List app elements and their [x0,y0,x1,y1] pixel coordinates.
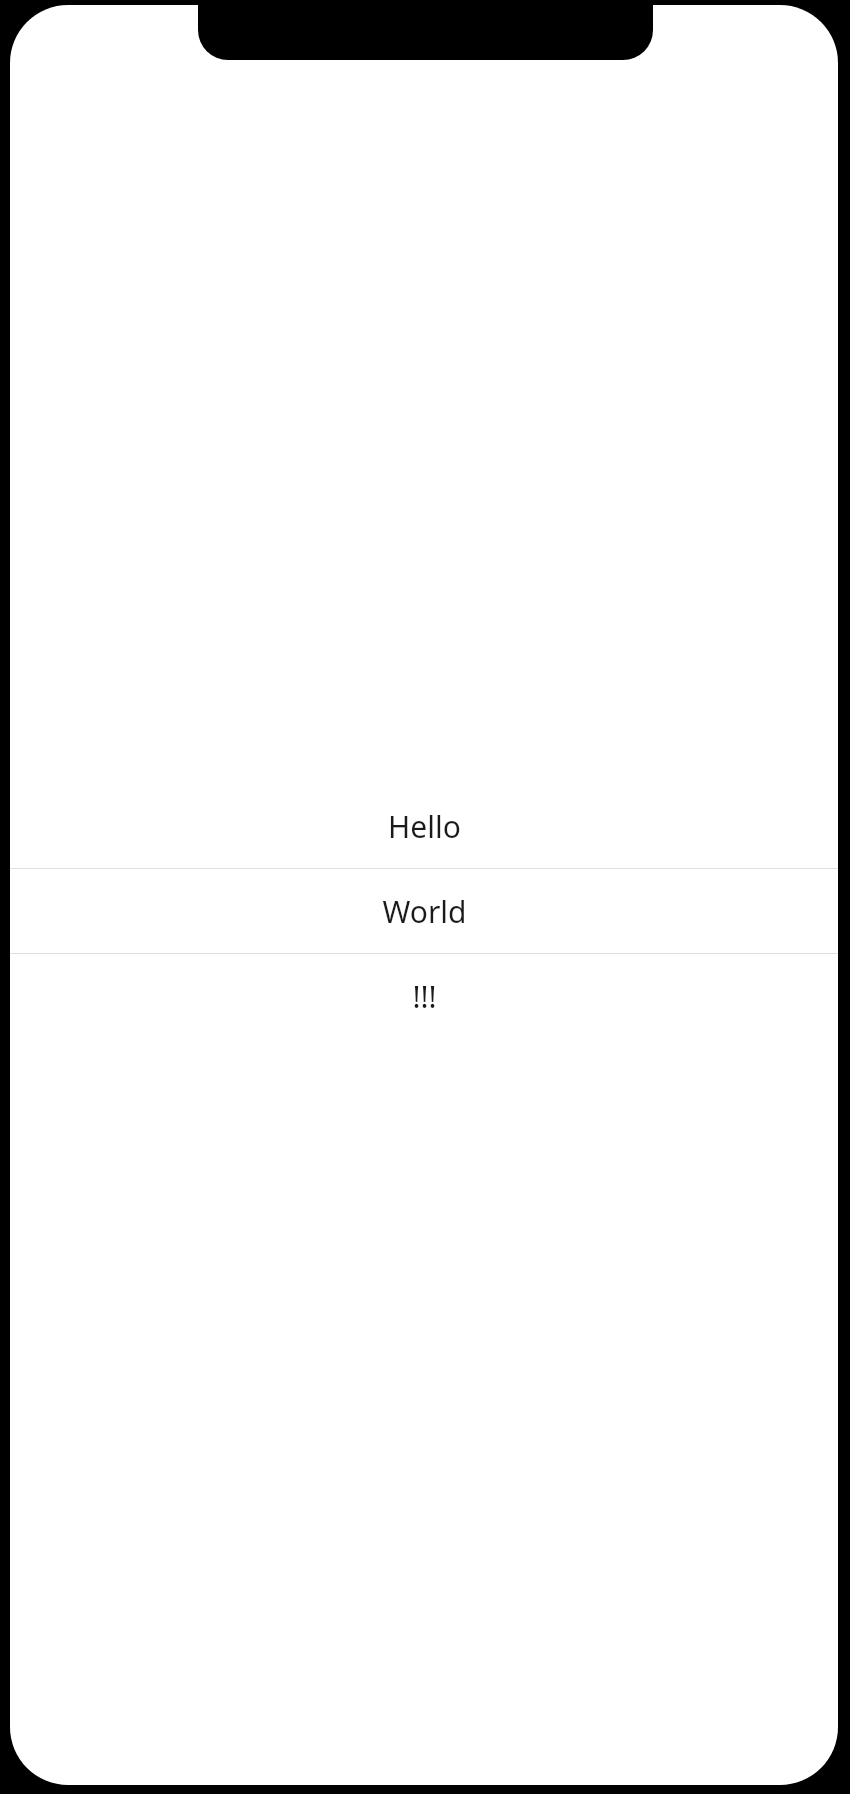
staticText: Hello [388,806,461,847]
staticText: !!! [412,976,437,1017]
button[interactable]: Hello [10,784,838,868]
button[interactable]: !!! [10,954,838,1038]
button[interactable]: World [10,869,838,953]
staticText: World [382,891,467,932]
